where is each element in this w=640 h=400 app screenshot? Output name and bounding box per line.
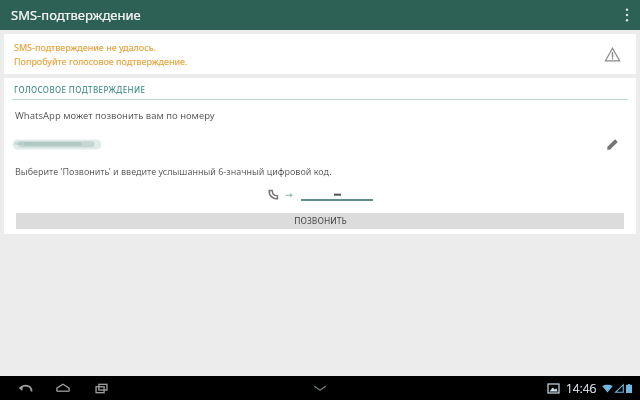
button[interactable]: More options [614, 0, 640, 30]
button[interactable]: Edit phone number [600, 132, 624, 156]
staticText: Выберите 'Позвонить' и введите услышанны… [15, 165, 332, 177]
staticText: SMS-подтверждение не удалось. [14, 41, 156, 53]
staticText: Попробуйте голосовое подтверждение. [14, 55, 188, 67]
button[interactable]: Verification code field [301, 188, 373, 201]
staticText: 14:46 [566, 380, 597, 396]
button[interactable]: Home [50, 376, 76, 400]
button[interactable]: Status bar [548, 380, 632, 396]
staticText: SMS-подтверждение [11, 6, 141, 24]
staticText: ПОЗВОНИТЬ [294, 215, 347, 227]
button[interactable]: Back [12, 376, 38, 400]
staticText: ГОЛОСОВОЕ ПОДТВЕРЖДЕНИЕ [14, 84, 146, 95]
button[interactable]: Warning [600, 42, 624, 66]
staticText: WhatsApp может позвонить вам по номеру [15, 109, 215, 122]
button[interactable]: Recent apps [88, 376, 114, 400]
button[interactable]: ПОЗВОНИТЬ [16, 213, 624, 229]
button[interactable]: Hide navigation bar [309, 377, 331, 399]
